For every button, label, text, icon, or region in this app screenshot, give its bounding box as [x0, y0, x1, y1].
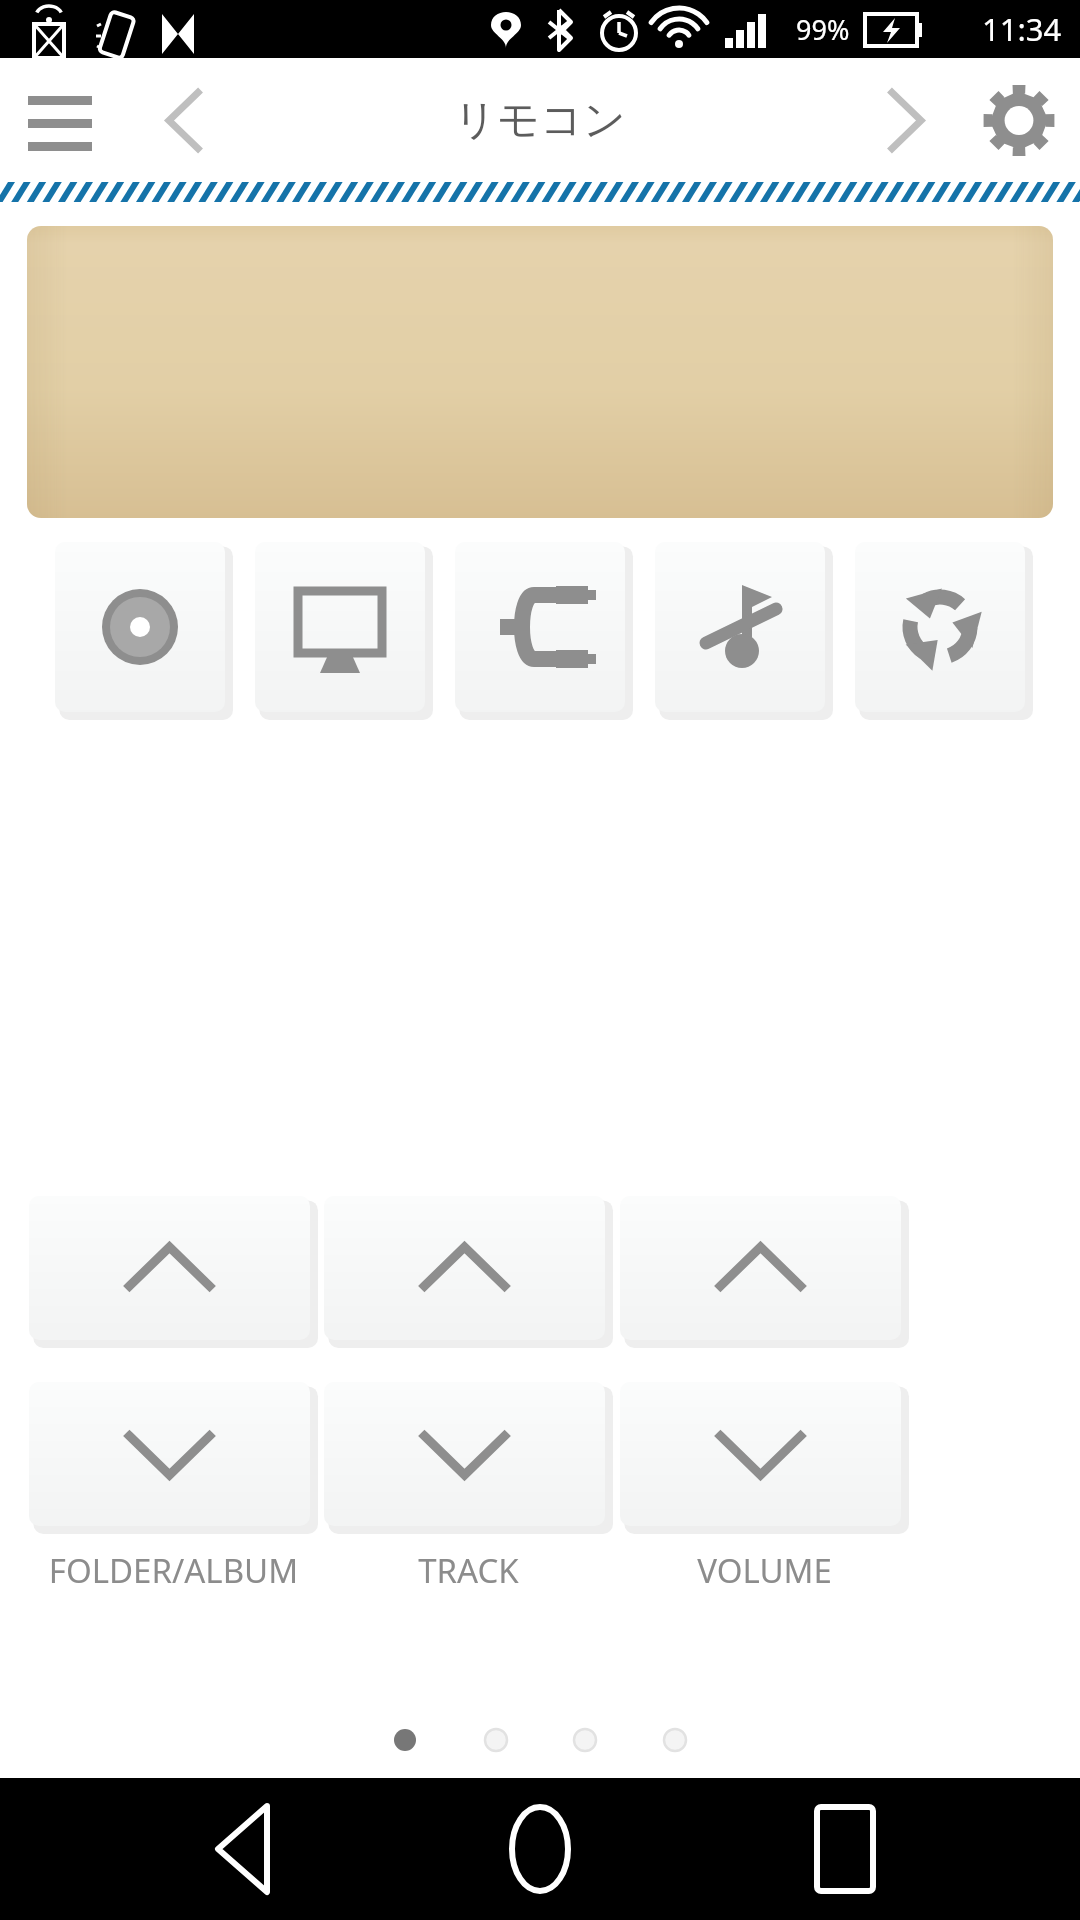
staticText: リモコン: [454, 94, 626, 147]
button[interactable]: TRACK down: [324, 1382, 613, 1534]
button[interactable]: TRACK up: [324, 1196, 613, 1348]
button[interactable]: Repeat: [855, 542, 1033, 720]
button[interactable]: Menu: [10, 58, 110, 183]
staticText: FOLDER/ALBUM: [29, 1548, 318, 1593]
button[interactable]: Disc: [55, 542, 233, 720]
staticText: TRACK: [324, 1548, 613, 1593]
button[interactable]: Back: [150, 1778, 340, 1920]
button[interactable]: Display: [255, 542, 433, 720]
staticText: VOLUME: [620, 1548, 909, 1593]
button[interactable]: VOLUME up: [620, 1196, 909, 1348]
button[interactable]: [27, 226, 1053, 518]
button[interactable]: FOLDER/ALBUM up: [29, 1196, 318, 1348]
button[interactable]: Previous: [128, 58, 238, 183]
staticText: 99%: [796, 11, 850, 48]
button[interactable]: Settings: [970, 58, 1080, 183]
staticText: 11:34: [982, 8, 1062, 50]
button[interactable]: Next: [852, 58, 962, 183]
button[interactable]: Home: [445, 1778, 635, 1920]
button[interactable]: Recent apps: [750, 1778, 940, 1920]
button[interactable]: Music off: [655, 542, 833, 720]
button[interactable]: FOLDER/ALBUM down: [29, 1382, 318, 1534]
button[interactable]: VOLUME down: [620, 1382, 909, 1534]
button[interactable]: Aux input: [455, 542, 633, 720]
